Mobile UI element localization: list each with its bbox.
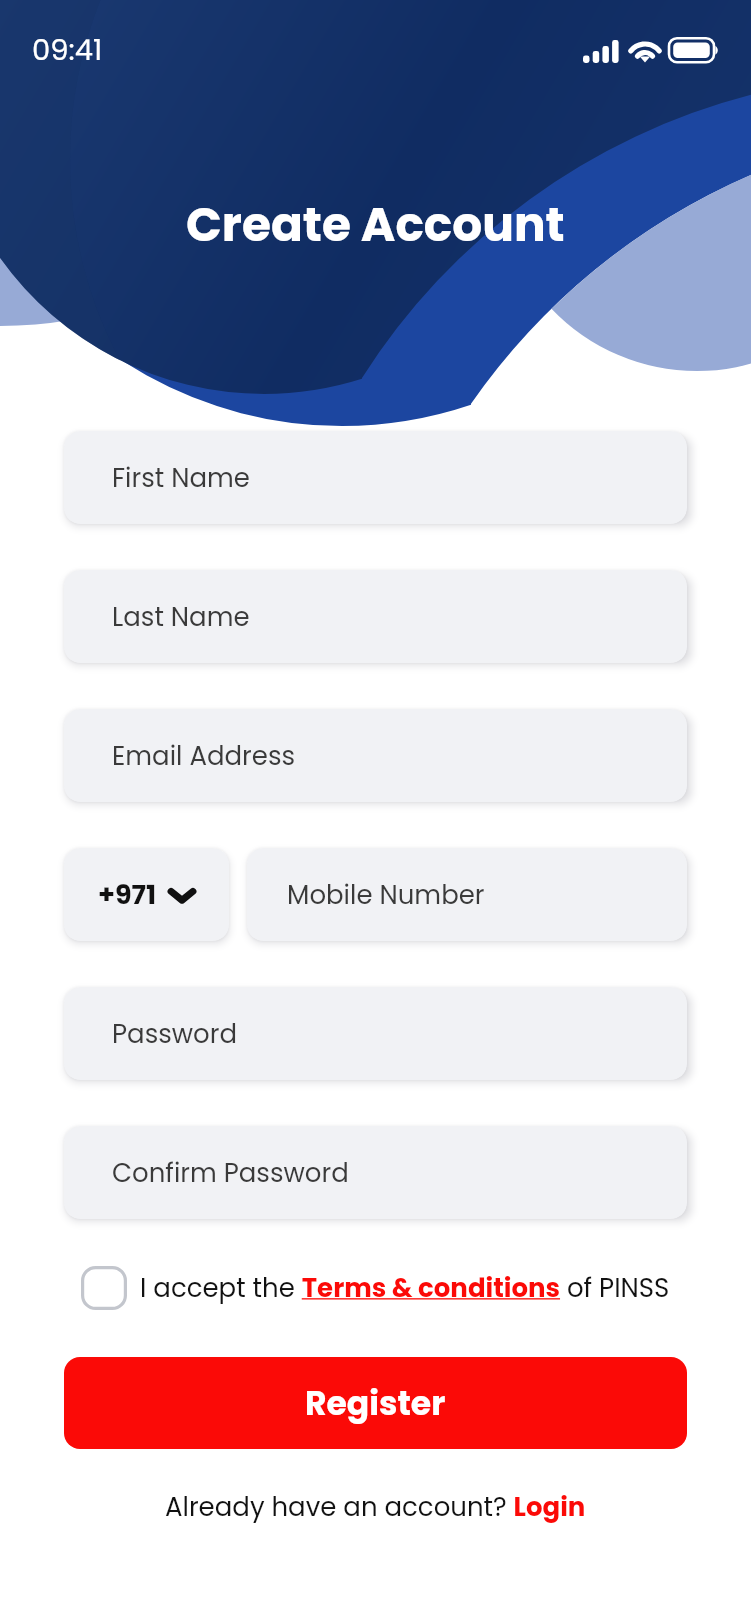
staticText: Mobile Number <box>287 877 485 913</box>
button[interactable]: Confirm Password <box>64 1126 687 1219</box>
staticText: Create Account <box>186 192 565 258</box>
staticText: Email Address <box>112 738 296 774</box>
button[interactable]: Mobile Number <box>247 848 687 941</box>
staticText: Register <box>305 1380 446 1426</box>
staticText: Password <box>112 1016 238 1052</box>
button[interactable]: Already have an account? Login <box>165 1489 586 1525</box>
button[interactable]: First Name <box>64 431 687 524</box>
staticText: Last Name <box>112 599 250 635</box>
button[interactable]: Accept terms and conditions <box>0 1266 751 1310</box>
staticText: First Name <box>112 460 250 496</box>
other: Accept terms and conditions <box>81 1266 127 1310</box>
button[interactable]: Email Address <box>64 709 687 802</box>
button[interactable]: +971 <box>64 848 229 941</box>
button[interactable]: Last Name <box>64 570 687 663</box>
button[interactable]: Register <box>64 1357 687 1449</box>
staticText: +971 <box>98 876 157 914</box>
staticText: Already have an account? Login <box>165 1489 586 1525</box>
staticText: 09:41 <box>32 30 103 71</box>
button[interactable]: Password <box>64 987 687 1080</box>
staticText: I accept the Terms & conditions of PINSS <box>140 1270 670 1306</box>
staticText: Confirm Password <box>112 1155 349 1191</box>
